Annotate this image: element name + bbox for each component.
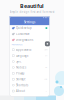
- staticText: Simple design first and foremost: [9, 10, 54, 14]
- button[interactable]: Quick setup: [9, 25, 49, 31]
- staticText: Language: [16, 54, 29, 57]
- staticText: Customize: [16, 32, 30, 36]
- button[interactable]: Privacy: [9, 70, 49, 76]
- button[interactable]: Shortcuts: [9, 82, 49, 88]
- button[interactable]: Language: [9, 53, 49, 59]
- button[interactable]: Appearance: [9, 47, 49, 53]
- staticText: Settings: [24, 20, 35, 24]
- button[interactable]: Sync: [9, 59, 49, 64]
- staticText: About: [16, 89, 25, 93]
- staticText: Appearance: [16, 48, 32, 51]
- staticText: On: [45, 67, 47, 68]
- staticText: Notices: [16, 66, 26, 69]
- staticText: EN: [45, 55, 47, 57]
- staticText: 1.0: [45, 90, 47, 92]
- button[interactable]: About: [9, 88, 49, 94]
- staticText: Privacy: [16, 72, 24, 75]
- staticText: 4 GB: [44, 78, 47, 80]
- staticText: Storage: [16, 77, 26, 81]
- staticText: Quick setup: [16, 26, 32, 30]
- staticText: Shortcuts: [16, 83, 28, 87]
- button[interactable]: Storage: [9, 76, 49, 82]
- staticText: Sync: [16, 60, 21, 63]
- staticText: Integrations: [16, 38, 33, 42]
- staticText: Light: [44, 49, 47, 51]
- staticText: PREFERENCES: [12, 44, 23, 46]
- button[interactable]: Notices: [9, 64, 49, 70]
- button[interactable]: Integrations: [9, 37, 49, 43]
- button[interactable]: Customize: [9, 31, 49, 37]
- staticText: Beautiful: [20, 2, 44, 9]
